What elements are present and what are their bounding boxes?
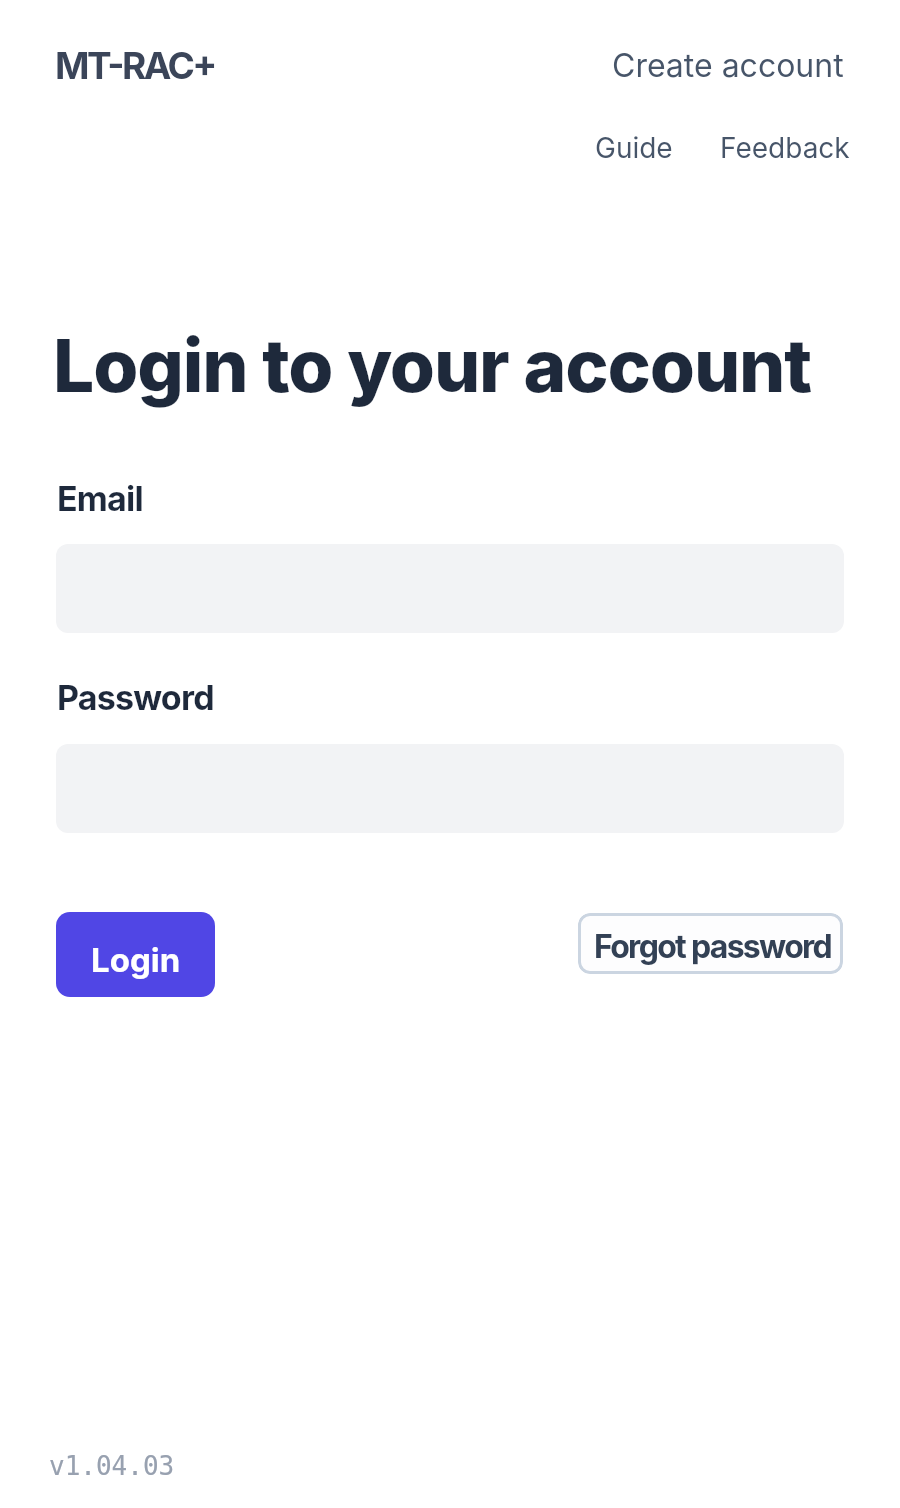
button[interactable]: Feedback [720,120,850,175]
staticText: Feedback [720,131,850,165]
staticText: Login to your account [53,321,812,409]
button[interactable]: Create account [612,38,844,92]
button[interactable]: Login [56,912,215,997]
staticText: Login [91,940,181,980]
staticText: v1.04.03 [49,1451,175,1481]
staticText: Create account [612,46,844,85]
staticText: Forgot password [594,927,832,966]
button[interactable]: Guide [595,120,673,175]
staticText: Password [57,677,214,718]
staticText: Email [57,478,143,519]
button[interactable]: Forgot password [578,913,843,974]
staticText: Guide [595,131,673,165]
staticText: MT-RAC+ [55,43,215,88]
